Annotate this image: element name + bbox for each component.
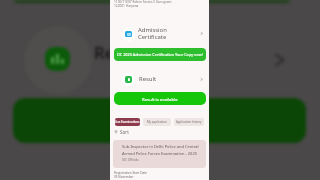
staticText: Live Examinations [115,120,140,124]
button[interactable]: DC 2025 Admission Certification Your Cop… [114,48,206,61]
button[interactable]: Live Examinations [115,118,140,126]
staticText: My application [147,120,167,124]
staticText: SSC Officials [122,158,139,162]
staticText: DC 2025 Admission Certification Your Cop… [117,52,203,57]
button[interactable]: My application [143,118,171,126]
button[interactable]: Sort [114,128,129,136]
other: Open [199,77,204,82]
other: Open [199,31,204,36]
staticText: Re [94,41,115,64]
staticText: Sort [120,129,129,135]
staticText: 1100/11007 Rohini Sector-5 Gurugram 1220… [114,0,172,8]
staticText: Application history [176,120,202,124]
button[interactable]: Result [110,70,209,88]
button[interactable]: Sub-Inspector in Delhi Police and Centra… [113,140,206,168]
button[interactable]: Admission Certificate [110,24,209,43]
button[interactable]: Application history [174,118,204,126]
staticText: Sub-Inspector in Delhi Police and Centra… [122,144,199,156]
staticText: Result [139,75,157,83]
staticText: Registration Start Date 05 November [114,171,148,179]
button[interactable]: Result is available [114,92,206,105]
staticText: Result is available [142,96,178,102]
staticText: Admission Certificate [138,26,167,41]
